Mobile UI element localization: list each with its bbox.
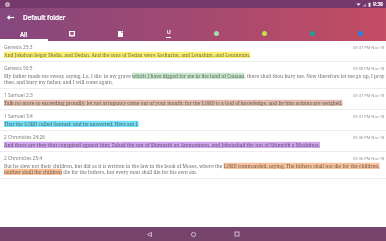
button[interactable]: 1 Samuel 2:3 <box>0 89 386 109</box>
button[interactable]: Genesis 50:5 <box>0 62 386 88</box>
button[interactable]: Teal highlights <box>288 28 336 39</box>
staticText: 09:37 PM Nov 18 <box>353 93 385 98</box>
staticText: Genesis 50:5 <box>4 65 33 72</box>
staticText: That the LORD called Samuel: and he answ… <box>4 121 139 127</box>
button[interactable]: Home <box>171 227 215 241</box>
staticText: And Jokshan begat Sheba, and Dedan. And … <box>4 52 251 58</box>
staticText: U <box>167 29 171 36</box>
button[interactable]: Genesis 25:3 <box>0 41 386 61</box>
staticText: 1 Samuel 2:3 <box>4 92 33 99</box>
staticText: 2 Chronicles 24:26 <box>4 134 46 141</box>
staticText: 09:36 PM Nov 18 <box>353 156 385 161</box>
staticText: All <box>20 30 28 38</box>
button[interactable]: Recent apps <box>215 227 259 241</box>
staticText: 1 Samuel 3:4 <box>4 113 33 120</box>
staticText: 09:37 PM Nov 18 <box>353 114 385 119</box>
button[interactable]: 2 Chronicles 25:4 <box>0 152 386 178</box>
staticText: 09:36 PM Nov 18 <box>353 135 385 140</box>
button[interactable]: Yellow highlights <box>240 28 288 39</box>
staticText: And these are they that conspired agains… <box>4 142 320 148</box>
button[interactable]: 2 Chronicles 24:26 <box>0 131 386 151</box>
button[interactable]: Green highlights <box>192 28 240 39</box>
staticText: But he slew not their children, but did … <box>4 163 385 175</box>
button[interactable]: Underlines <box>144 28 192 39</box>
button[interactable]: Notes <box>96 28 144 39</box>
staticText: Default folder <box>23 13 66 22</box>
button[interactable]: Back <box>127 227 171 241</box>
staticText: My father made me swear, saying, Lo, I d… <box>4 73 385 85</box>
button[interactable]: 1 Samuel 3:4 <box>0 110 386 130</box>
button[interactable]: Blue highlights <box>336 28 384 39</box>
staticText: 2 Chronicles 25:4 <box>4 155 43 162</box>
staticText: 09:37 PM Nov 18 <box>353 45 385 50</box>
button[interactable]: All tab <box>0 28 48 39</box>
button[interactable]: Bookmarks <box>48 28 96 39</box>
staticText: 09:08 PM Nov 18 <box>353 66 385 71</box>
button[interactable]: Back <box>0 8 21 26</box>
staticText: Genesis 25:3 <box>4 44 33 51</box>
staticText: 9:38 <box>373 1 383 8</box>
staticText: Talk no more so exceeding proudly; let n… <box>4 100 343 106</box>
